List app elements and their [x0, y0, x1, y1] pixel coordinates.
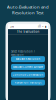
- staticText: Review Full Transcript: [14, 81, 41, 84]
- staticText: Auto-Evaluation and: [7, 4, 49, 10]
- button[interactable]: Continue Conversation: [11, 72, 45, 78]
- button[interactable]: Evaluate Current Answer: [11, 64, 45, 70]
- staticText: Evaluate Current Answer: [13, 65, 43, 69]
- button[interactable]: Evaluate Resolution: [11, 56, 45, 62]
- staticText: Continue Conversation: [12, 73, 43, 76]
- staticText: Select Resolution / Evaluation: [11, 50, 35, 57]
- staticText: The Evaluation: [16, 30, 39, 34]
- staticText: Evaluate Resolution: [15, 57, 40, 61]
- staticText: ıll ⌁ ▮: [38, 25, 46, 28]
- button[interactable]: Review Full Transcript: [11, 79, 45, 85]
- staticText: 9:41: [10, 25, 14, 28]
- staticText: Resolution Test: [12, 10, 44, 16]
